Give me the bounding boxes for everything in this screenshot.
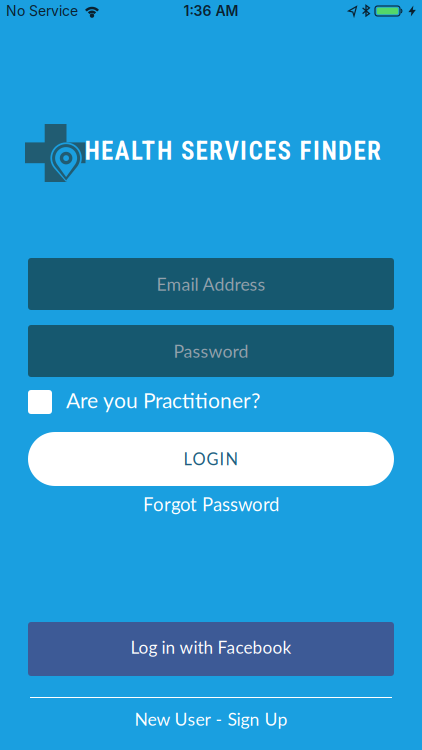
staticText: No Service (6, 2, 78, 19)
button[interactable]: Are you Practitioner? (0, 390, 422, 414)
staticText: Email Address (156, 273, 265, 295)
button[interactable]: Log in with Facebook (28, 622, 394, 676)
button[interactable]: LOGIN (28, 432, 394, 486)
staticText: Are you Practitioner? (66, 387, 260, 413)
staticText: HEALTH SERVICES FINDER (84, 136, 381, 166)
button[interactable]: New User - Sign Up (134, 708, 287, 730)
button[interactable]: Email Address (28, 258, 394, 310)
staticText: 1:36 AM (183, 2, 238, 19)
button[interactable]: Password (28, 325, 394, 377)
staticText: Log in with Facebook (130, 637, 291, 657)
staticText: Forgot Password (143, 493, 279, 515)
button[interactable]: Forgot Password (143, 494, 279, 514)
staticText: LOGIN (183, 449, 238, 469)
staticText: Password (173, 340, 248, 362)
staticText: New User - Sign Up (134, 708, 287, 729)
